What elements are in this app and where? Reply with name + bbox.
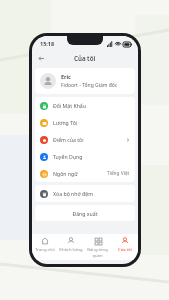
- button[interactable]: Bảng tổng quan: [84, 234, 111, 260]
- button[interactable]: Eric: [35, 68, 135, 94]
- staticText: Xóa bộ nhớ đệm: [53, 190, 94, 197]
- staticText: Đăng xuất: [72, 210, 98, 217]
- button[interactable]: Tuyển Dụng: [35, 148, 135, 165]
- button[interactable]: Ngôn ngữ: [35, 165, 135, 182]
- staticText: Khách hàng: [59, 247, 83, 253]
- staticText: Của tôi: [118, 247, 132, 253]
- staticText: Lương Tôi: [53, 119, 78, 126]
- button[interactable]: Đăng xuất: [35, 205, 135, 221]
- staticText: Tiếng Việt: [107, 170, 130, 177]
- staticText: Ngôn ngữ: [53, 170, 78, 177]
- button[interactable]: Đổi Mật Khẩu: [35, 97, 135, 114]
- button[interactable]: Lương Tôi: [35, 114, 135, 131]
- staticText: Fidoort - Tổng Giám đốc: [61, 82, 118, 89]
- staticText: Tuyển Dụng: [53, 153, 83, 160]
- button[interactable]: Khách hàng: [58, 234, 84, 260]
- button[interactable]: Menu: [36, 53, 46, 63]
- staticText: 15:18: [40, 40, 55, 47]
- button[interactable]: Của tôi: [111, 234, 138, 260]
- button[interactable]: Điểm của tôi: [35, 131, 135, 148]
- button[interactable]: Xóa bộ nhớ đệm: [35, 185, 135, 202]
- staticText: Bảng tổng quan: [87, 247, 108, 258]
- button[interactable]: Trang chủ: [32, 234, 58, 260]
- staticText: Đổi Mật Khẩu: [53, 102, 86, 109]
- staticText: Của tôi: [74, 54, 96, 62]
- staticText: Eric: [61, 73, 71, 80]
- staticText: Trang chủ: [35, 247, 55, 253]
- staticText: Điểm của tôi: [53, 136, 84, 143]
